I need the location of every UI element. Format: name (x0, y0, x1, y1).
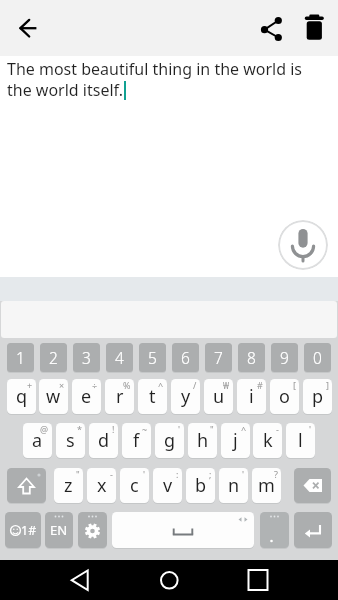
staticText: o (279, 384, 290, 409)
button[interactable] (254, 10, 292, 50)
staticText: i (249, 384, 254, 409)
button[interactable]: 3 (73, 343, 100, 372)
button[interactable]: r (105, 379, 134, 414)
button[interactable]: z (54, 468, 83, 503)
button[interactable] (60, 560, 100, 600)
button[interactable]: f (122, 423, 151, 458)
staticText: % (123, 379, 131, 391)
button[interactable] (149, 560, 189, 600)
button[interactable]: i (237, 379, 266, 414)
staticText: 1 (16, 347, 25, 368)
staticText: EN (50, 521, 68, 539)
button[interactable]: e (72, 379, 101, 414)
button[interactable]: x (87, 468, 116, 503)
staticText: y (181, 384, 191, 409)
staticText: s (66, 428, 75, 453)
button[interactable]: 6 (172, 343, 199, 372)
button[interactable]: EN (45, 512, 73, 548)
button[interactable] (294, 468, 331, 503)
button[interactable]: 5 (139, 343, 166, 372)
button[interactable] (294, 512, 332, 548)
staticText: t (149, 384, 156, 409)
button[interactable]: 0 (304, 343, 331, 372)
button[interactable]: a (23, 423, 52, 458)
staticText: ] (326, 379, 329, 391)
button[interactable]: y (171, 379, 200, 414)
staticText: × (59, 379, 65, 391)
button[interactable]: 2 (40, 343, 67, 372)
staticText: 3 (82, 347, 91, 368)
button[interactable] (78, 512, 107, 548)
staticText: ; (209, 468, 212, 480)
staticText: 5 (148, 347, 157, 368)
staticText: d (98, 428, 110, 453)
staticText: l (298, 428, 303, 453)
staticText: 7 (214, 347, 223, 368)
staticText: @ (40, 423, 49, 435)
button[interactable]: s (56, 423, 85, 458)
staticText: ' (178, 423, 181, 435)
staticText: n (228, 473, 240, 498)
staticText: # (257, 379, 263, 391)
staticText: ~ (142, 423, 148, 435)
button[interactable]: t (138, 379, 167, 414)
button[interactable]: 7 (205, 343, 232, 372)
staticText: 1# (21, 522, 37, 539)
staticText: x (97, 473, 107, 498)
button[interactable]: h (188, 423, 217, 458)
staticText: k (263, 428, 273, 453)
button[interactable] (238, 560, 278, 600)
button[interactable] (296, 10, 334, 50)
staticText: 2 (49, 347, 58, 368)
staticText: ' (309, 423, 312, 435)
staticText: : (176, 468, 179, 480)
button[interactable]: c (120, 468, 149, 503)
staticText: The most beautiful thing in the world is (7, 58, 303, 80)
button[interactable]: q (7, 379, 36, 414)
button[interactable] (260, 512, 289, 548)
staticText: r (116, 384, 124, 409)
button[interactable]: k (253, 423, 282, 458)
button[interactable]: b (186, 468, 215, 503)
button[interactable] (7, 468, 46, 503)
button[interactable] (112, 512, 254, 548)
button[interactable] (278, 220, 328, 270)
button[interactable]: p (303, 379, 332, 414)
button[interactable]: u (204, 379, 233, 414)
button[interactable]: d (89, 423, 118, 458)
staticText: u (213, 384, 225, 409)
staticText: 8 (247, 347, 256, 368)
staticText: v (163, 473, 173, 498)
button[interactable]: l (286, 423, 315, 458)
staticText: w (46, 384, 61, 409)
button[interactable]: g (155, 423, 184, 458)
staticText: + (27, 379, 33, 391)
button[interactable] (8, 10, 48, 50)
staticText: 0 (313, 347, 322, 368)
staticText: 9 (280, 347, 289, 368)
staticText: ^ (241, 423, 247, 435)
staticText: e (81, 384, 92, 409)
staticText: ' (143, 468, 146, 480)
button[interactable]: 8 (238, 343, 265, 372)
staticText: ' (242, 468, 245, 480)
staticText: ^ (158, 379, 164, 391)
button[interactable]: o (270, 379, 299, 414)
button[interactable]: 1# (5, 512, 41, 548)
button[interactable]: 9 (271, 343, 298, 372)
staticText: j (233, 428, 238, 453)
button[interactable]: w (39, 379, 68, 414)
staticText: m (258, 473, 275, 498)
button[interactable]: v (153, 468, 182, 503)
button[interactable]: n (219, 468, 248, 503)
staticText: [ (293, 379, 296, 391)
staticText: g (164, 428, 176, 453)
staticText: - (276, 423, 279, 435)
button[interactable]: 4 (106, 343, 133, 372)
button[interactable]: m (252, 468, 281, 503)
button[interactable]: 1 (7, 343, 34, 372)
staticText: h (197, 428, 209, 453)
button[interactable]: j (221, 423, 250, 458)
staticText: z (64, 473, 73, 498)
